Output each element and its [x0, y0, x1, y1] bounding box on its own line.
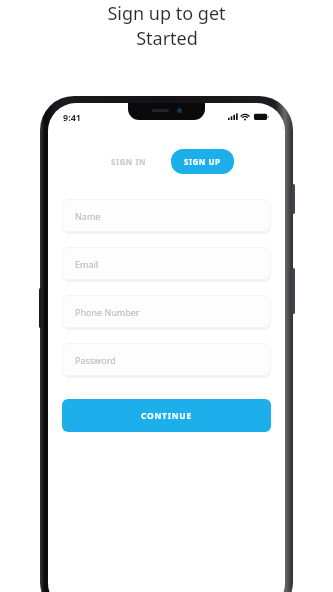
staticText: Sign up to get — [107, 1, 226, 26]
button[interactable]: SIGN UP — [171, 149, 234, 174]
staticText: Phone Number — [75, 306, 140, 318]
staticText: Email — [75, 258, 99, 270]
button[interactable]: Password — [62, 343, 271, 376]
staticText: Password — [75, 354, 116, 366]
staticText: SIGN IN — [111, 156, 147, 167]
staticText: CONTINUE — [141, 410, 192, 422]
button[interactable]: Email — [62, 247, 271, 280]
button[interactable]: SIGN IN — [99, 150, 159, 173]
staticText: SIGN UP — [184, 156, 221, 167]
staticText: Name — [75, 210, 101, 222]
button[interactable]: Name — [62, 199, 271, 232]
other: Volume button — [292, 184, 295, 214]
other: Power button — [292, 268, 295, 314]
staticText: Started — [136, 26, 198, 51]
button[interactable]: CONTINUE — [62, 399, 271, 432]
button[interactable]: Phone Number — [62, 295, 271, 328]
staticText: 9:41 — [63, 111, 81, 123]
